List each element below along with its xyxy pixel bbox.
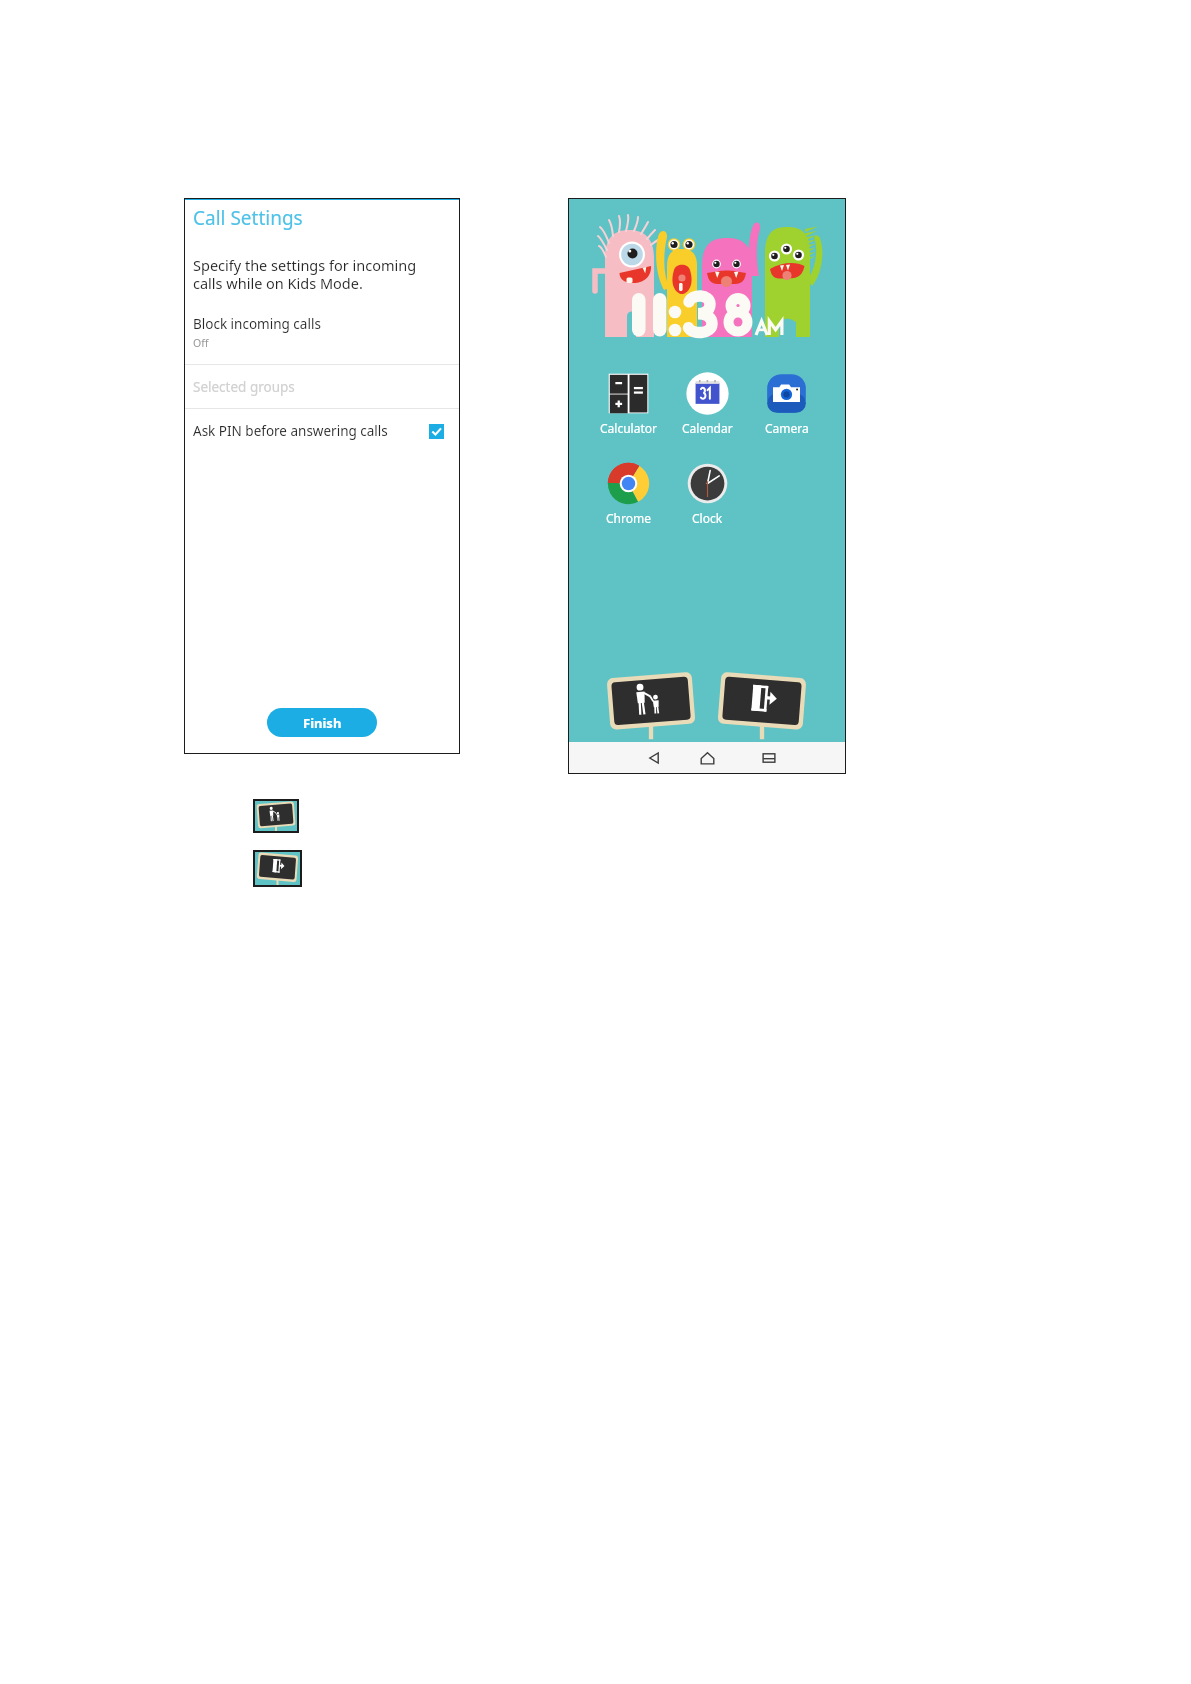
button[interactable]: Recent apps [747, 742, 791, 774]
button[interactable]: Calendar [668, 369, 747, 438]
staticText: Calendar [682, 420, 733, 436]
staticText: Specify the settings for incoming calls … [193, 255, 417, 293]
button[interactable]: Selected groups [184, 365, 460, 408]
staticText: Finish [303, 714, 342, 732]
button[interactable]: Exit kids mode icon [253, 850, 302, 887]
staticText: Call Settings [193, 205, 303, 231]
staticText: Chrome [606, 510, 651, 526]
button[interactable]: Clock [668, 459, 747, 528]
staticText: Ask PIN before answering calls [193, 422, 388, 440]
button[interactable]: Finish [267, 708, 377, 737]
button[interactable]: Back [632, 742, 676, 774]
staticText: Block incoming calls [193, 315, 321, 333]
button[interactable]: Calculator [589, 369, 668, 438]
button[interactable]: Parental control [608, 673, 694, 741]
button[interactable]: Camera [747, 369, 826, 438]
staticText: Camera [765, 420, 809, 436]
staticText: Selected groups [193, 378, 295, 396]
button[interactable]: Home [685, 742, 729, 774]
button[interactable]: Parental control icon [253, 799, 299, 833]
staticText: Calculator [600, 420, 657, 436]
staticText: Clock [692, 510, 723, 526]
button[interactable]: Block incoming calls [184, 315, 460, 350]
button[interactable]: Exit kids mode [719, 673, 805, 741]
staticText: Off [193, 336, 209, 350]
button[interactable]: Ask PIN before answering calls [184, 409, 460, 453]
button[interactable]: Chrome [589, 459, 668, 528]
